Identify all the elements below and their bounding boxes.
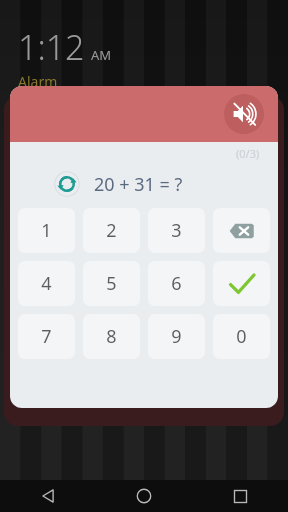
button[interactable]: Recents — [192, 480, 288, 512]
button[interactable]: 2 — [83, 208, 140, 253]
button[interactable]: Backspace — [213, 208, 270, 253]
button[interactable]: 3 — [148, 208, 205, 253]
button[interactable]: 9 — [148, 314, 205, 359]
button[interactable]: Confirm — [213, 261, 270, 306]
staticText: Alarm — [18, 72, 58, 91]
staticText: 8 — [106, 324, 117, 349]
button[interactable]: Back — [0, 480, 96, 512]
button[interactable]: Mute — [224, 94, 264, 134]
staticText: 2 — [106, 218, 117, 243]
staticText: (0/3) — [236, 146, 260, 161]
button[interactable]: New question — [54, 171, 80, 197]
staticText: 3 — [171, 218, 182, 243]
staticText: 20 + 31 = ? — [94, 172, 183, 197]
button[interactable]: Home — [96, 480, 192, 512]
staticText: 6 — [171, 271, 182, 296]
button[interactable]: 8 — [83, 314, 140, 359]
staticText: 0 — [236, 324, 247, 349]
staticText: 5 — [106, 271, 117, 296]
staticText: 7 — [41, 324, 52, 349]
staticText: 1:12 — [18, 24, 85, 70]
staticText: 1 — [41, 218, 52, 243]
button[interactable]: 7 — [18, 314, 75, 359]
button[interactable]: 5 — [83, 261, 140, 306]
button[interactable]: 4 — [18, 261, 75, 306]
staticText: 4 — [41, 271, 52, 296]
staticText: AM — [91, 46, 112, 64]
button[interactable]: 0 — [213, 314, 270, 359]
staticText: 9 — [171, 324, 182, 349]
button[interactable]: 6 — [148, 261, 205, 306]
button[interactable]: 1 — [18, 208, 75, 253]
